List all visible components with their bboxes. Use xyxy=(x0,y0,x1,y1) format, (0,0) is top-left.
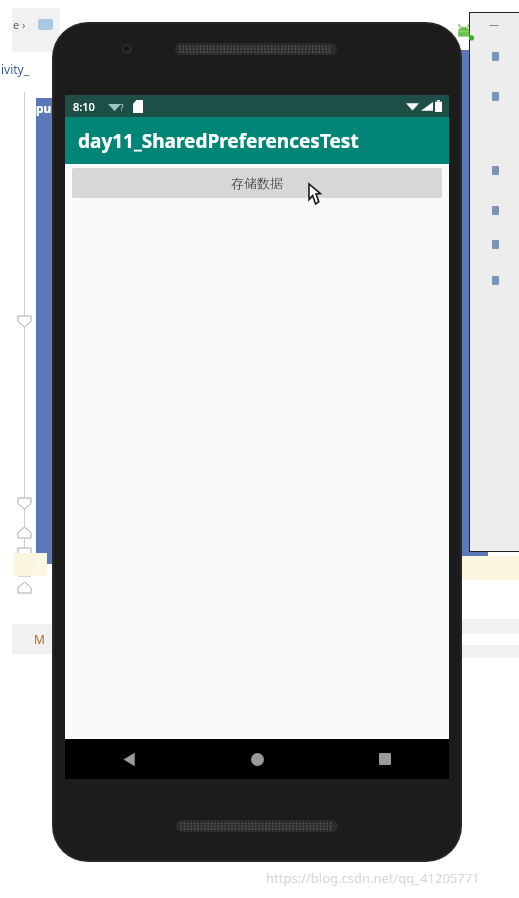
button[interactable]: Home xyxy=(193,739,321,779)
button[interactable]: Back xyxy=(65,739,193,779)
staticText: ivity_ xyxy=(1,61,30,77)
staticText: day11_SharedPreferencesTest xyxy=(78,128,359,154)
staticText: } xyxy=(36,555,41,571)
staticText: e › xyxy=(13,17,26,32)
staticText: https://blog.csdn.net/qq_41205771 xyxy=(266,869,480,887)
button[interactable]: 存储数据 xyxy=(72,168,442,198)
staticText: pu xyxy=(36,100,52,116)
staticText: 8:10 xyxy=(73,99,95,114)
staticText: ? xyxy=(120,102,124,113)
staticText: 存储数据 xyxy=(231,175,283,191)
staticText: — xyxy=(489,17,499,31)
button[interactable]: Recents xyxy=(321,739,449,779)
staticText: M xyxy=(34,631,45,647)
